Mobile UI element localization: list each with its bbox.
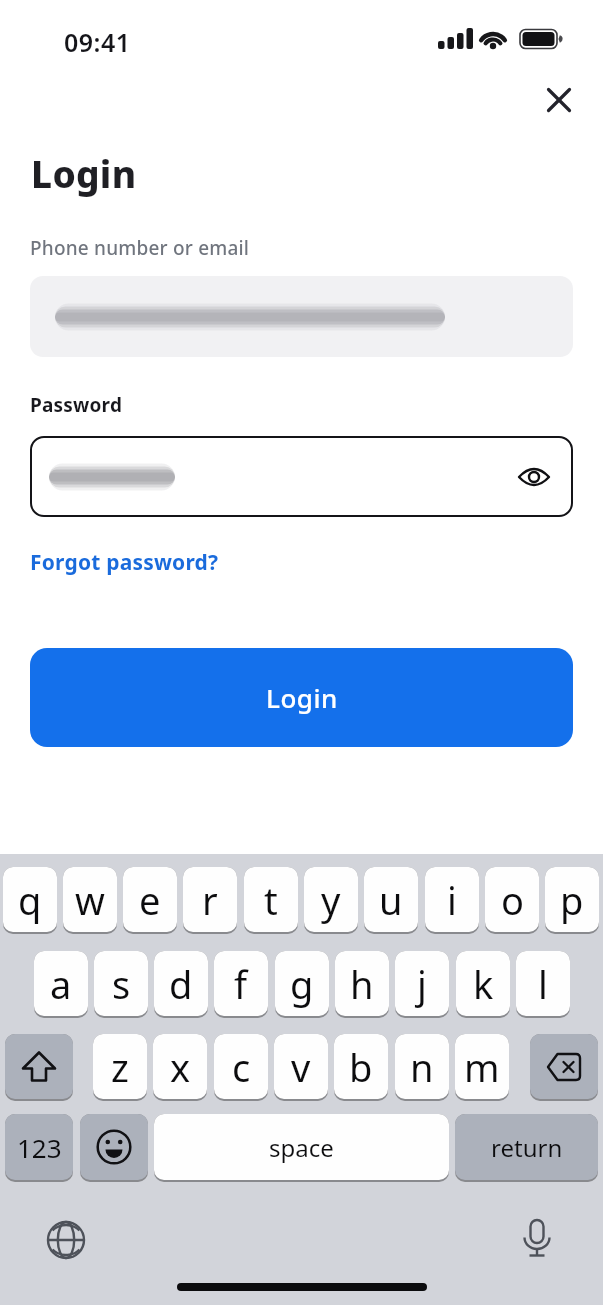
button[interactable]: j <box>395 951 449 1016</box>
button[interactable]: y <box>304 867 358 932</box>
button[interactable]: f <box>214 951 268 1016</box>
staticText: l <box>538 958 548 1010</box>
staticText: p <box>560 874 584 926</box>
button[interactable]: i <box>425 867 479 932</box>
staticText: h <box>350 958 374 1010</box>
staticText: i <box>447 874 457 926</box>
staticText: b <box>349 1041 373 1093</box>
button[interactable]: x <box>153 1034 207 1099</box>
staticText: x <box>170 1041 191 1093</box>
staticText: Forgot password? <box>30 548 219 577</box>
button[interactable] <box>30 436 573 517</box>
staticText: Phone number or email <box>30 235 250 261</box>
staticText: a <box>50 958 72 1010</box>
button[interactable]: n <box>395 1034 449 1099</box>
staticText: 09:41 <box>64 25 131 59</box>
button[interactable] <box>80 1114 148 1180</box>
button[interactable]: return <box>455 1114 598 1180</box>
button[interactable]: p <box>545 867 599 932</box>
staticText: r <box>202 874 218 926</box>
button[interactable]: r <box>183 867 237 932</box>
staticText: t <box>264 874 278 926</box>
button[interactable] <box>530 1034 598 1099</box>
button[interactable]: space <box>154 1114 449 1180</box>
staticText: k <box>473 958 494 1010</box>
staticText: j <box>417 958 427 1010</box>
staticText: n <box>410 1041 434 1093</box>
staticText: d <box>169 958 193 1010</box>
button[interactable]: u <box>364 867 418 932</box>
button[interactable]: b <box>334 1034 388 1099</box>
button[interactable]: t <box>244 867 298 932</box>
button[interactable] <box>507 1209 567 1269</box>
button[interactable]: Forgot password? <box>30 548 219 577</box>
staticText: y <box>321 874 341 926</box>
staticText: return <box>491 1131 563 1164</box>
button[interactable] <box>5 1034 73 1099</box>
button[interactable]: 123 <box>5 1114 73 1180</box>
staticText: Login <box>266 680 338 715</box>
button[interactable]: m <box>455 1034 509 1099</box>
staticText: c <box>232 1041 251 1093</box>
staticText: f <box>234 958 248 1010</box>
button[interactable]: k <box>456 951 510 1016</box>
button[interactable] <box>30 276 573 357</box>
staticText: q <box>18 874 42 926</box>
button[interactable]: o <box>485 867 539 932</box>
button[interactable]: d <box>154 951 208 1016</box>
staticText: s <box>112 958 131 1010</box>
button[interactable] <box>36 1210 96 1270</box>
staticText: v <box>291 1041 311 1093</box>
button[interactable]: Login <box>30 648 573 747</box>
staticText: space <box>269 1131 334 1164</box>
button[interactable]: v <box>274 1034 328 1099</box>
button[interactable] <box>538 79 580 121</box>
button[interactable]: q <box>3 867 57 932</box>
staticText: u <box>379 874 403 926</box>
button[interactable]: c <box>214 1034 268 1099</box>
button[interactable]: z <box>93 1034 147 1099</box>
button[interactable]: g <box>275 951 329 1016</box>
staticText: Password <box>30 392 123 418</box>
button[interactable]: l <box>516 951 570 1016</box>
staticText: 123 <box>17 1130 62 1165</box>
staticText: w <box>75 874 105 926</box>
staticText: z <box>111 1041 129 1093</box>
staticText: e <box>139 874 161 926</box>
button[interactable] <box>512 455 556 499</box>
staticText: Login <box>31 148 137 198</box>
button[interactable]: w <box>63 867 117 932</box>
button[interactable]: h <box>335 951 389 1016</box>
staticText: m <box>464 1041 500 1093</box>
button[interactable]: e <box>123 867 177 932</box>
staticText: g <box>290 958 314 1010</box>
button[interactable]: s <box>94 951 148 1016</box>
button[interactable]: a <box>34 951 88 1016</box>
staticText: o <box>501 874 524 926</box>
